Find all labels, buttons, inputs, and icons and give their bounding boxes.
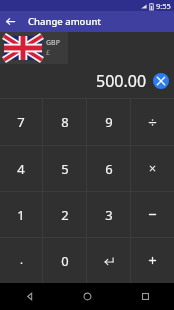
button[interactable]: Back: [0, 11, 21, 32]
staticText: 1: [17, 206, 25, 224]
button[interactable]: Back: [0, 283, 58, 310]
staticText: 5: [61, 160, 69, 178]
staticText: 2: [61, 206, 69, 224]
button[interactable]: 8: [43, 99, 86, 145]
button[interactable]: 5: [43, 146, 86, 191]
staticText: 8: [61, 113, 69, 131]
button[interactable]: GBP: [0, 32, 68, 64]
staticText: GBP: [46, 38, 60, 48]
button[interactable]: 1: [0, 192, 42, 237]
button[interactable]: Enter: [87, 238, 130, 283]
button[interactable]: 6: [87, 146, 130, 191]
staticText: Change amount: [28, 15, 101, 28]
staticText: 4: [17, 160, 25, 178]
button[interactable]: Add: [131, 238, 174, 283]
staticText: £: [46, 48, 51, 58]
staticText: 3: [105, 206, 113, 224]
button[interactable]: 9: [87, 99, 130, 145]
staticText: 6: [105, 160, 113, 178]
button[interactable]: 2: [43, 192, 86, 237]
button[interactable]: 3: [87, 192, 130, 237]
button[interactable]: Clear amount: [153, 73, 169, 89]
button[interactable]: 7: [0, 99, 42, 145]
button[interactable]: 0: [43, 238, 86, 283]
button[interactable]: Decimal point: [0, 238, 42, 283]
button[interactable]: Subtract: [131, 192, 174, 237]
button[interactable]: 4: [0, 146, 42, 191]
staticText: 9: [105, 113, 113, 131]
button[interactable]: Home: [58, 283, 116, 310]
button[interactable]: Multiply: [131, 146, 174, 191]
button[interactable]: Divide: [131, 99, 174, 145]
staticText: 500.00: [96, 70, 147, 92]
button[interactable]: Recent apps: [116, 283, 174, 310]
staticText: 7: [17, 113, 25, 131]
staticText: 0: [61, 252, 69, 270]
staticText: 9:55: [156, 1, 171, 11]
